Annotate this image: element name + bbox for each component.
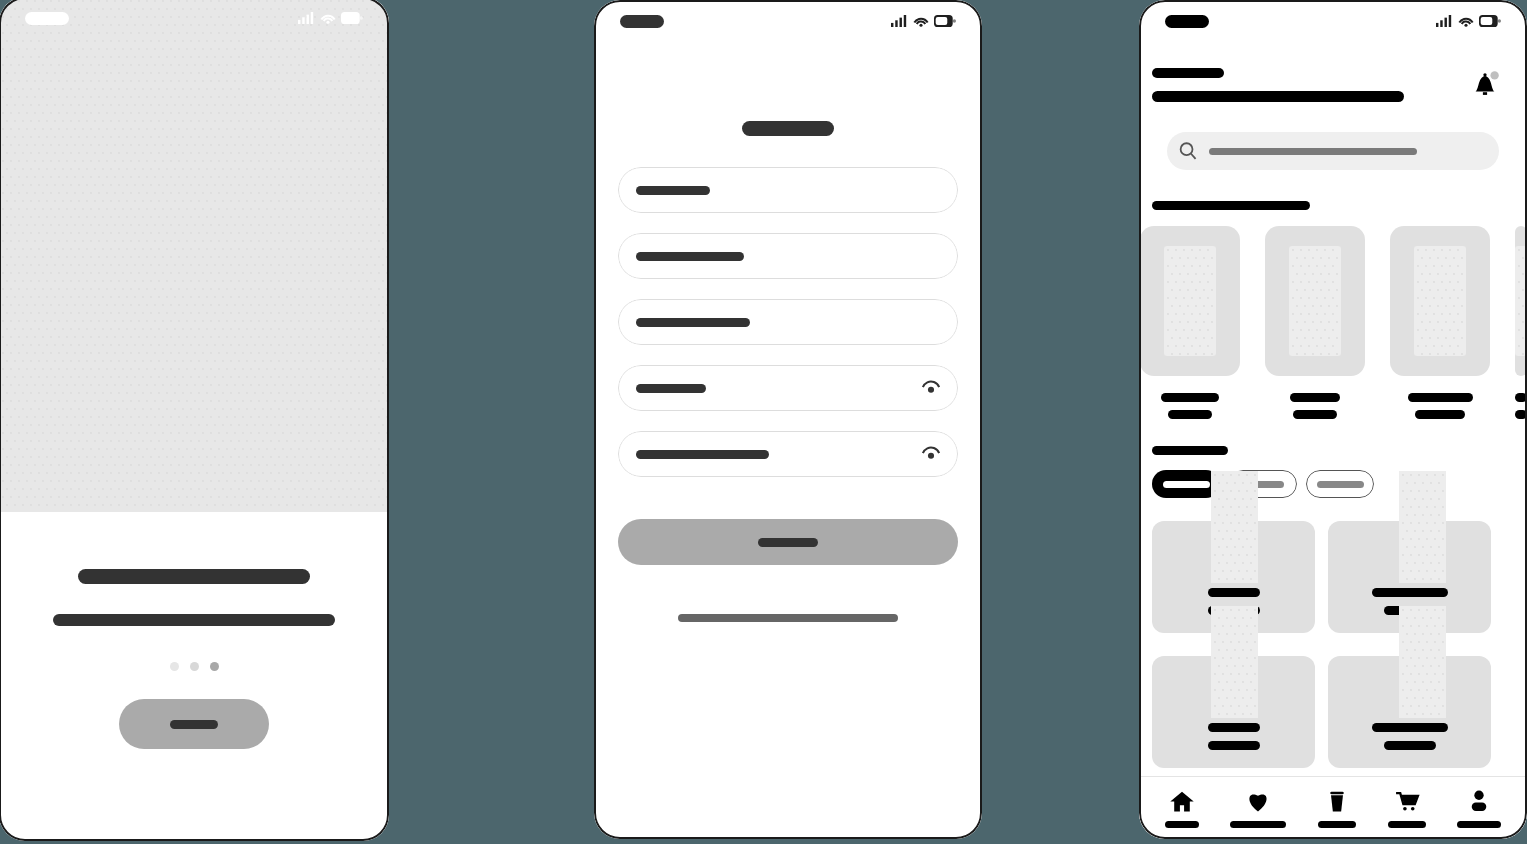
button[interactable]	[1265, 226, 1365, 376]
button[interactable]	[1515, 226, 1527, 376]
button[interactable]: Cart	[1382, 784, 1432, 832]
button[interactable]	[1152, 656, 1315, 768]
button[interactable]: Home	[1159, 784, 1205, 832]
button[interactable]: Profile	[1451, 784, 1507, 832]
button[interactable]	[678, 614, 898, 622]
button[interactable]	[618, 233, 958, 279]
button[interactable]	[119, 699, 269, 749]
button[interactable]: Show password	[920, 377, 942, 399]
button[interactable]	[1140, 226, 1240, 376]
button[interactable]: Show password	[618, 365, 958, 411]
button[interactable]	[1306, 470, 1374, 498]
button[interactable]	[1152, 521, 1315, 633]
button[interactable]	[1328, 521, 1491, 633]
button[interactable]: Drinks	[1312, 784, 1362, 832]
button[interactable]	[1152, 470, 1220, 498]
button[interactable]	[1167, 132, 1499, 170]
button[interactable]: Show password	[618, 431, 958, 477]
button[interactable]	[1328, 656, 1491, 768]
button[interactable]: Notifications	[1470, 70, 1500, 100]
button[interactable]	[618, 167, 958, 213]
button[interactable]: Show password	[920, 443, 942, 465]
button[interactable]	[618, 299, 958, 345]
button[interactable]	[618, 519, 958, 565]
button[interactable]	[1229, 470, 1297, 498]
button[interactable]	[1390, 226, 1490, 376]
button[interactable]: Favorites	[1224, 784, 1292, 832]
